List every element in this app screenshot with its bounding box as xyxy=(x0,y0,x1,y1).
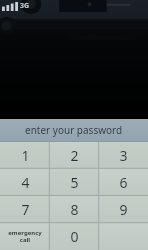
other: Signal strength xyxy=(2,2,18,11)
button[interactable]: emergency call xyxy=(0,223,50,250)
staticText: 3 xyxy=(119,146,128,165)
button[interactable]: 2 xyxy=(50,141,99,169)
button[interactable]: 1 xyxy=(0,141,50,169)
staticText: 8 xyxy=(70,200,79,219)
staticText: 0 xyxy=(70,227,79,246)
button[interactable]: 4 xyxy=(0,169,50,196)
button[interactable]: 7 xyxy=(0,196,50,223)
staticText: 7 xyxy=(21,200,30,219)
staticText: 4 xyxy=(21,173,30,192)
staticText: 9 xyxy=(119,200,128,219)
staticText: 1 xyxy=(21,146,30,165)
staticText: 3G xyxy=(20,1,30,11)
staticText: enter your password xyxy=(25,123,123,137)
button[interactable]: 3 xyxy=(99,141,148,169)
staticText: 6 xyxy=(119,173,128,192)
button[interactable]: 0 xyxy=(50,223,99,250)
button[interactable]: 5 xyxy=(50,169,99,196)
button[interactable]: 6 xyxy=(99,169,148,196)
staticText: 5 xyxy=(70,173,79,192)
staticText: emergency call xyxy=(8,229,42,244)
button[interactable]: 9 xyxy=(99,196,148,223)
staticText: 2 xyxy=(70,146,79,165)
button[interactable]: 8 xyxy=(50,196,99,223)
